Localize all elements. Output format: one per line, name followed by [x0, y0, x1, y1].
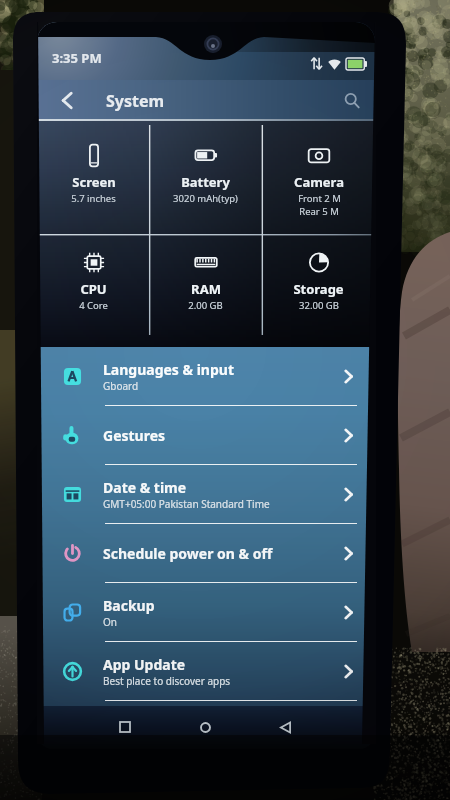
staticText: Storage — [293, 280, 344, 298]
staticText: 5.7 inches — [71, 192, 116, 205]
staticText: 4 Core — [79, 299, 108, 312]
staticText: App Update — [103, 655, 186, 674]
staticText: Schedule power on & off — [103, 544, 273, 563]
button[interactable]: App Update — [37, 642, 375, 701]
staticText: Camera — [294, 173, 344, 191]
staticText: Languages & input — [103, 360, 234, 379]
staticText: 2.00 GB — [188, 299, 223, 312]
button[interactable]: Backup — [37, 583, 375, 642]
button[interactable]: Storage — [262, 234, 375, 346]
staticText: Gestures — [103, 426, 166, 445]
button[interactable]: RAM — [149, 234, 262, 346]
staticText: RAM — [191, 280, 221, 298]
button[interactable]: Date & time — [37, 465, 375, 524]
staticText: Backup — [103, 596, 155, 615]
staticText: 32.00 GB — [299, 299, 339, 312]
button[interactable]: Screen — [37, 121, 149, 234]
staticText: Best place to discover apps — [103, 674, 231, 688]
button[interactable]: CPU — [37, 234, 149, 346]
button[interactable]: Back — [263, 706, 307, 748]
button[interactable]: Search — [334, 80, 370, 121]
button[interactable]: Home — [183, 706, 227, 748]
staticText: Screen — [72, 173, 116, 191]
staticText: Gboard — [103, 379, 139, 393]
staticText: Date & time — [103, 478, 187, 497]
staticText: System — [106, 90, 165, 112]
button[interactable]: Recent apps — [103, 706, 147, 748]
button[interactable]: Schedule power on & off — [37, 524, 375, 583]
staticText: Battery — [181, 173, 230, 191]
staticText: Rear 5 M — [299, 205, 339, 218]
staticText: Front 2 M — [298, 192, 341, 205]
button[interactable]: Back — [49, 80, 85, 121]
staticText: On — [103, 615, 117, 629]
staticText: GMT+05:00 Pakistan Standard Time — [103, 497, 270, 511]
button[interactable]: Camera — [262, 121, 375, 234]
button[interactable]: Languages & input — [37, 347, 375, 406]
staticText: 3020 mAh(typ) — [173, 192, 238, 205]
staticText: CPU — [80, 280, 107, 298]
staticText: 3:35 PM — [52, 49, 102, 67]
button[interactable]: Battery — [149, 121, 262, 234]
button[interactable]: Gestures — [37, 406, 375, 465]
